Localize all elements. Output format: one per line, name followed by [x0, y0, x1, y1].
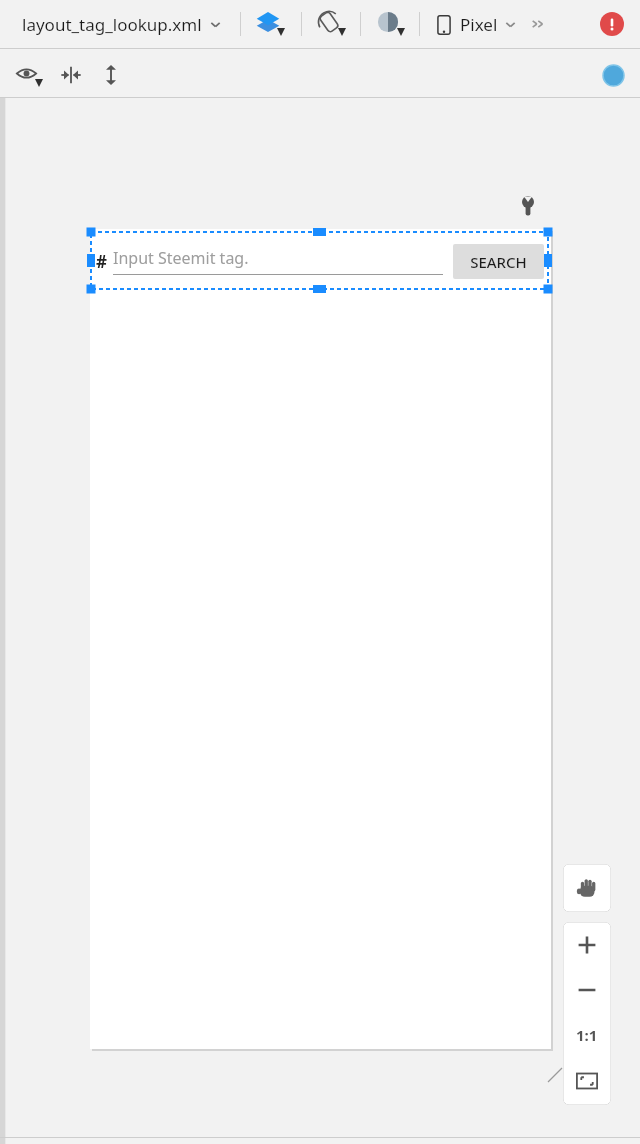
button[interactable]: Pan tool: [563, 864, 611, 912]
button[interactable]: Input Steemit tag.: [113, 247, 443, 275]
staticText: 1:1: [576, 1025, 598, 1045]
button[interactable]: More: [529, 15, 547, 33]
button[interactable]: Horizontal guideline: [57, 61, 85, 89]
button[interactable]: Show layout decorations: [253, 7, 287, 41]
staticText: Input Steemit tag.: [113, 247, 249, 269]
button[interactable]: Pixel: [434, 11, 519, 38]
staticText: SEARCH: [470, 252, 527, 272]
button[interactable]: Zoom to actual size: [563, 1012, 611, 1057]
button[interactable]: Help: [598, 60, 628, 90]
staticText: layout_tag_lookup.xml: [22, 13, 202, 36]
button[interactable]: SEARCH: [453, 244, 544, 279]
button[interactable]: Zoom to fit screen: [563, 1057, 611, 1105]
button[interactable]: Orientation: [314, 7, 348, 41]
button[interactable]: Visibility: [11, 58, 45, 92]
staticText: Pixel: [460, 13, 498, 36]
button[interactable]: Errors: [597, 9, 627, 39]
button[interactable]: layout_tag_lookup.xml: [18, 9, 226, 40]
button[interactable]: Zoom out: [563, 967, 611, 1012]
button[interactable]: Theme: [373, 7, 407, 41]
button[interactable]: Design surface settings: [514, 192, 541, 219]
button[interactable]: Zoom in: [563, 922, 611, 967]
staticText: #: [96, 250, 107, 273]
button[interactable]: Vertical arrow: [97, 61, 125, 89]
